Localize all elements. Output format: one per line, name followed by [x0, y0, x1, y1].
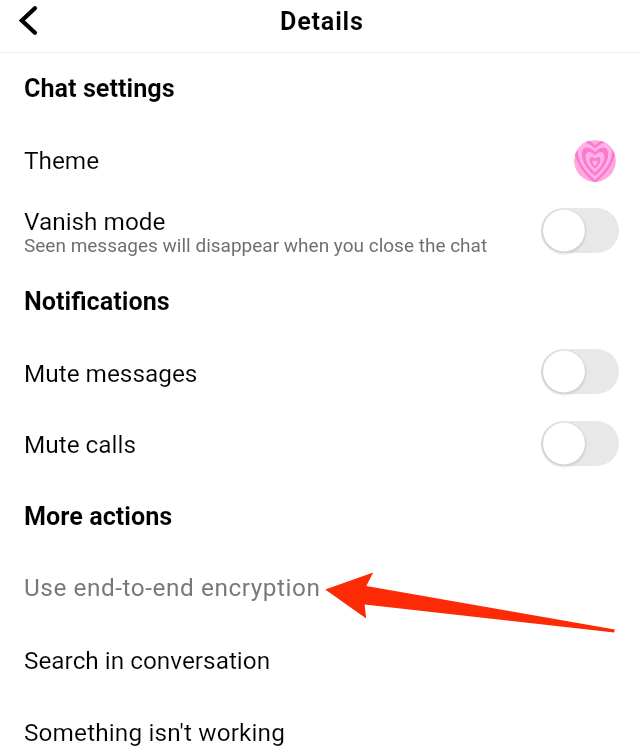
staticText: Chat settings — [24, 74, 175, 104]
staticText: Notifications — [24, 287, 170, 317]
button[interactable]: Back — [0, 0, 50, 50]
staticText: Details — [280, 7, 364, 37]
button[interactable] — [0, 350, 640, 406]
button[interactable]: Toggle off — [541, 421, 619, 466]
staticText: Vanish mode — [24, 207, 166, 236]
staticText: Mute messages — [24, 359, 198, 388]
staticText: Something isn't working — [24, 718, 286, 747]
staticText: Use end-to-end encryption — [24, 573, 321, 602]
button[interactable] — [0, 710, 640, 752]
button[interactable] — [0, 134, 640, 190]
button[interactable]: Toggle off — [541, 208, 619, 253]
button[interactable]: Toggle off — [541, 349, 619, 394]
button[interactable] — [0, 422, 640, 476]
staticText: Mute calls — [24, 430, 136, 459]
staticText: Theme — [24, 146, 100, 175]
button[interactable] — [0, 638, 640, 694]
staticText: More actions — [24, 502, 173, 532]
button[interactable] — [0, 196, 640, 264]
button[interactable]: Theme — [574, 140, 616, 182]
staticText: Seen messages will disappear when you cl… — [24, 234, 488, 256]
staticText: Search in conversation — [24, 646, 271, 675]
button[interactable] — [0, 566, 640, 622]
